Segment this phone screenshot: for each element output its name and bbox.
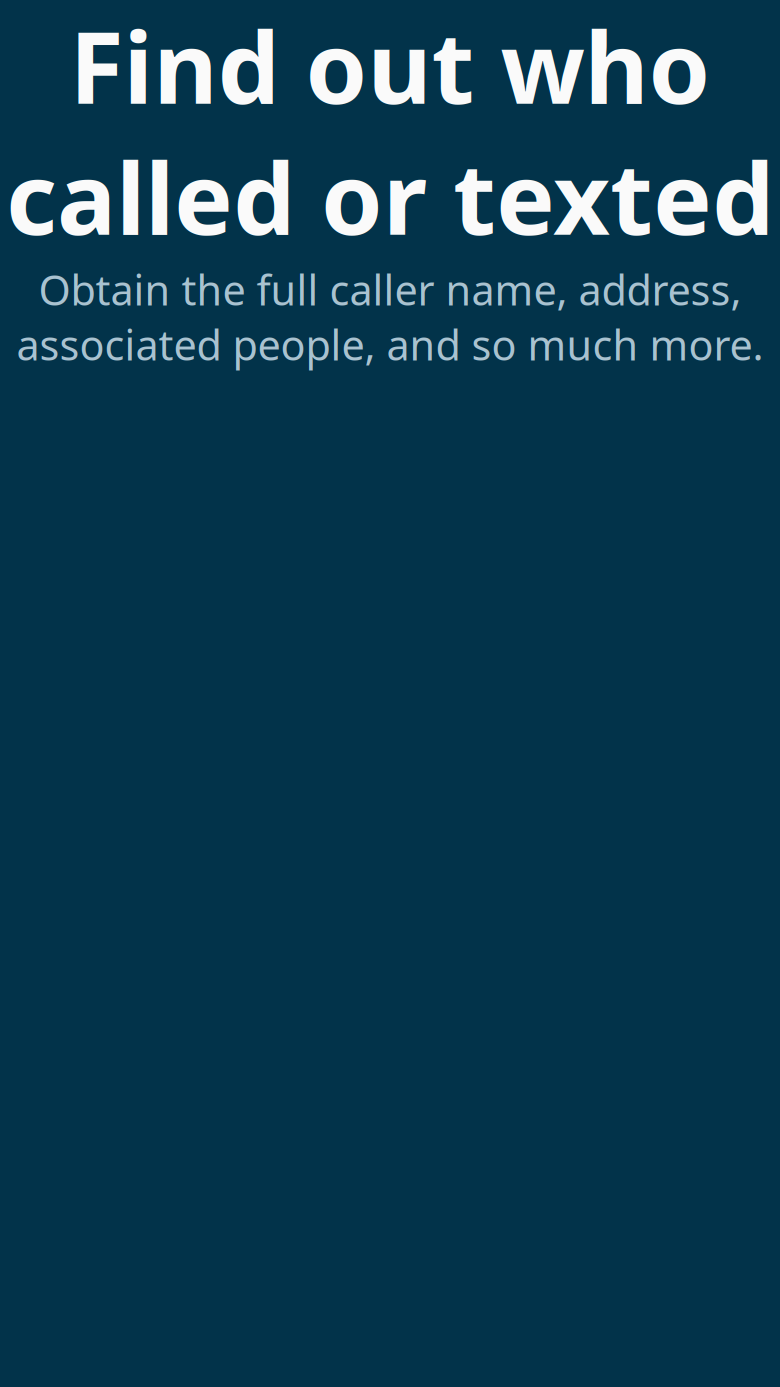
staticText: Find out who — [69, 0, 710, 131]
staticText: Obtain the full caller name, address, — [38, 262, 741, 317]
staticText: called or texted — [6, 131, 774, 262]
staticText: associated people, and so much more. — [16, 317, 763, 372]
